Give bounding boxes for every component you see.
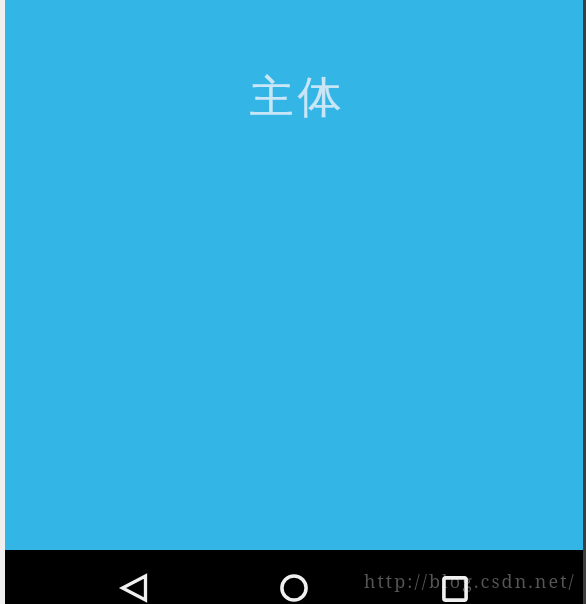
staticText: http://blog.csdn.net/ (364, 569, 576, 594)
button[interactable]: Home (271, 565, 317, 604)
staticText: 主体 (9, 70, 586, 125)
button[interactable]: Back (111, 565, 157, 604)
button[interactable]: Recent apps (432, 566, 478, 604)
